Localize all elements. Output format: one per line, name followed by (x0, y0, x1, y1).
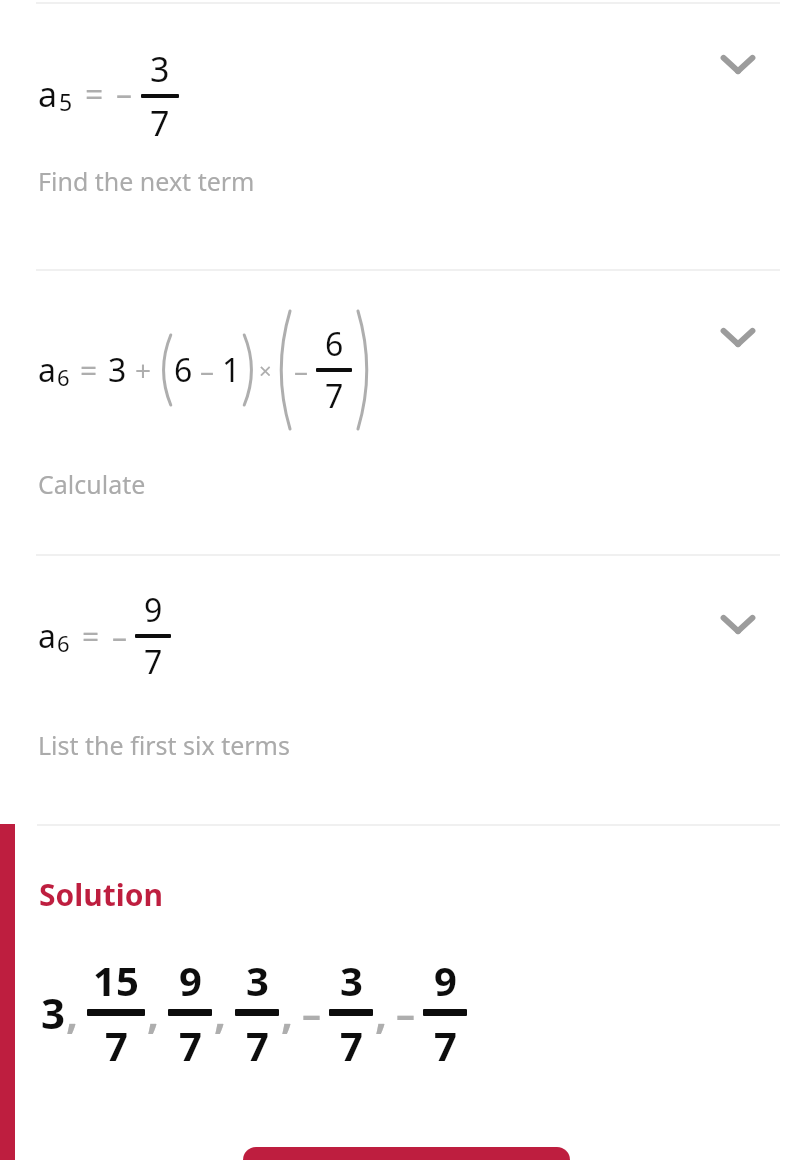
staticText: 5 (59, 86, 73, 117)
staticText: 3 (41, 984, 66, 1041)
staticText: 7 (144, 640, 163, 684)
button[interactable]: Continue (243, 1147, 570, 1160)
staticText: + (135, 351, 152, 389)
staticText: 6 (57, 628, 70, 658)
staticText: – (112, 616, 127, 657)
button[interactable]: Expand step (708, 34, 768, 94)
staticText: – (396, 987, 416, 1039)
staticText: 1 (222, 348, 241, 392)
button[interactable]: a (0, 4, 800, 269)
staticText: × (259, 355, 272, 385)
staticText: = (80, 350, 98, 391)
button[interactable]: a (0, 556, 800, 824)
staticText: a (38, 71, 58, 117)
staticText: 9 (144, 588, 163, 632)
staticText: a (38, 614, 56, 658)
staticText: – (200, 351, 215, 389)
staticText: 3 (150, 46, 170, 92)
staticText: 3 (340, 953, 363, 1007)
staticText: 6 (57, 362, 70, 392)
staticText: 7 (246, 1018, 269, 1072)
staticText: 9 (434, 953, 457, 1007)
staticText: 7 (150, 100, 170, 142)
staticText: – (116, 72, 133, 116)
staticText: , (147, 984, 159, 1041)
staticText: , (375, 984, 387, 1041)
staticText: 15 (93, 953, 139, 1007)
button[interactable]: a (0, 271, 800, 554)
staticText: 9 (179, 953, 202, 1007)
button[interactable]: Expand step (708, 594, 768, 654)
staticText: , (214, 984, 226, 1041)
staticText: 7 (340, 1018, 363, 1072)
staticText: – (294, 351, 309, 389)
staticText: , (281, 984, 293, 1041)
button[interactable]: Expand step (708, 307, 768, 367)
staticText: 3 (246, 953, 269, 1007)
staticText: Calculate (38, 467, 146, 501)
staticText: 7 (105, 1018, 128, 1072)
staticText: List the first six terms (38, 728, 290, 762)
staticText: 6 (325, 322, 344, 366)
staticText: , (66, 984, 78, 1041)
staticText: 7 (179, 1018, 202, 1072)
staticText: Find the next term (38, 164, 255, 198)
staticText: – (302, 987, 322, 1039)
staticText: = (82, 616, 100, 657)
staticText: Solution (39, 874, 163, 915)
staticText: 3 (108, 348, 127, 392)
staticText: 7 (434, 1018, 457, 1072)
staticText: = (85, 72, 104, 116)
staticText: 6 (174, 348, 193, 392)
staticText: a (38, 348, 56, 392)
staticText: 7 (325, 374, 344, 418)
